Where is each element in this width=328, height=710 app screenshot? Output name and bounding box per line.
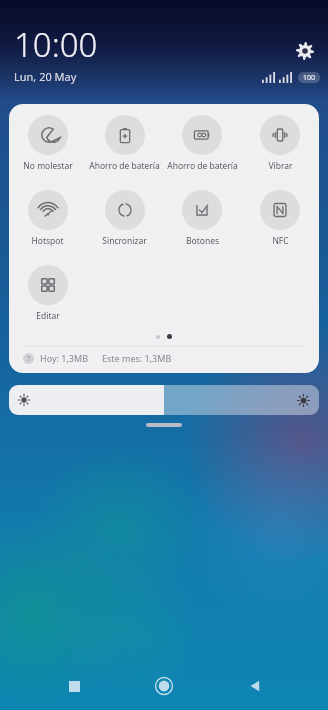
button[interactable]: No molestar [9,113,86,174]
staticText: Hotspot [31,235,64,247]
button[interactable]: Home [147,669,181,703]
staticText: Botones [186,235,219,247]
button[interactable]: Ahorro de batería [163,113,241,174]
button[interactable]: Back [238,669,272,703]
staticText: Sincronizar [102,235,147,247]
staticText: Este mes: 1,3MB [102,352,172,364]
staticText: Hoy: 1,3MB [40,352,88,364]
button[interactable]: Settings [292,38,318,64]
button[interactable]: Hotspot [9,188,86,249]
button[interactable]: ? [9,347,319,369]
staticText: NFC [272,235,289,247]
button[interactable]: Sincronizar [86,188,163,249]
staticText: Ahorro de batería [167,160,238,172]
staticText: Ahorro de batería [89,160,160,172]
staticText: ? [27,354,31,364]
button[interactable]: Brightness [9,385,319,415]
button[interactable]: Ahorro de batería [86,113,163,174]
button[interactable]: Botones [163,188,241,249]
button[interactable]: Vibrar [241,113,319,174]
button[interactable]: Recents [57,669,91,703]
button[interactable]: Editar [9,263,86,324]
staticText: Lun, 20 May [14,69,77,84]
button[interactable]: NFC [241,188,319,249]
staticText: 10:00 [14,22,98,67]
staticText: Vibrar [268,160,293,172]
staticText: 100 [303,73,316,83]
staticText: Editar [36,310,60,322]
staticText: No molestar [23,160,73,172]
